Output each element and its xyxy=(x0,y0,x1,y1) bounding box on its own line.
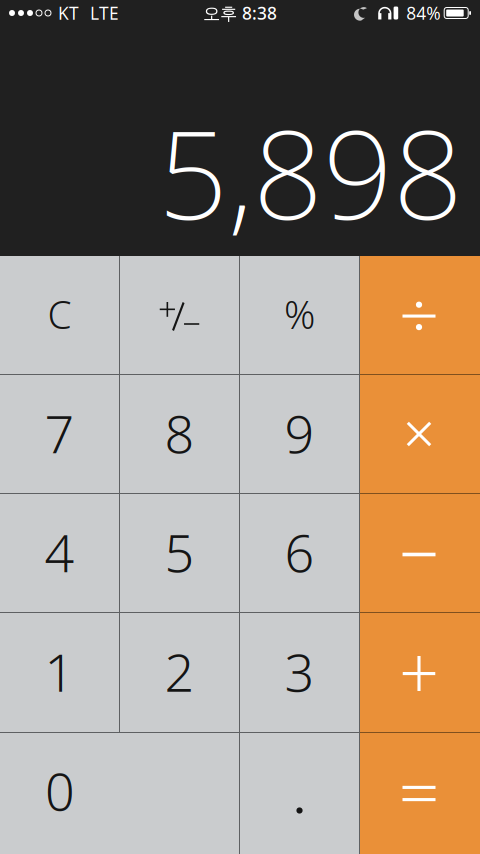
button[interactable]: 8 xyxy=(120,375,239,493)
staticText: 84% xyxy=(406,1,440,24)
button[interactable]: 9 xyxy=(240,375,359,493)
staticText: 8 xyxy=(164,398,194,468)
staticText: 0 xyxy=(45,756,75,825)
button[interactable]: Add xyxy=(360,613,480,732)
staticText: 2 xyxy=(164,637,194,706)
button[interactable]: % xyxy=(240,256,359,374)
button[interactable]: 4 xyxy=(0,494,119,612)
staticText: 5,898 xyxy=(158,91,463,253)
staticText: % xyxy=(284,288,315,340)
button[interactable]: 1 xyxy=(0,613,119,732)
button[interactable]: 7 xyxy=(0,375,119,493)
staticText: C xyxy=(47,288,71,340)
staticText: 4 xyxy=(44,517,74,587)
button[interactable]: 5 xyxy=(120,494,239,612)
button[interactable]: C xyxy=(0,256,119,374)
button[interactable]: Equals xyxy=(360,733,480,854)
button[interactable]: Toggle sign xyxy=(120,256,239,374)
button[interactable]: 6 xyxy=(240,494,359,612)
staticText: KT xyxy=(58,1,79,24)
staticText: LTE xyxy=(90,1,119,24)
staticText: 1 xyxy=(44,637,74,706)
button[interactable]: 3 xyxy=(240,613,359,732)
button[interactable]: Multiply xyxy=(360,375,480,493)
button[interactable]: Subtract xyxy=(360,494,480,612)
staticText: 3 xyxy=(284,637,314,706)
button[interactable]: 2 xyxy=(120,613,239,732)
staticText: 오후 8:38 xyxy=(203,1,277,24)
button[interactable]: Divide xyxy=(360,256,480,374)
staticText: 5 xyxy=(164,517,194,587)
staticText: 6 xyxy=(284,517,314,587)
staticText: 9 xyxy=(284,398,314,468)
button[interactable]: 0 xyxy=(0,733,239,854)
staticText: 7 xyxy=(44,398,74,468)
button[interactable]: Decimal point xyxy=(240,733,359,854)
